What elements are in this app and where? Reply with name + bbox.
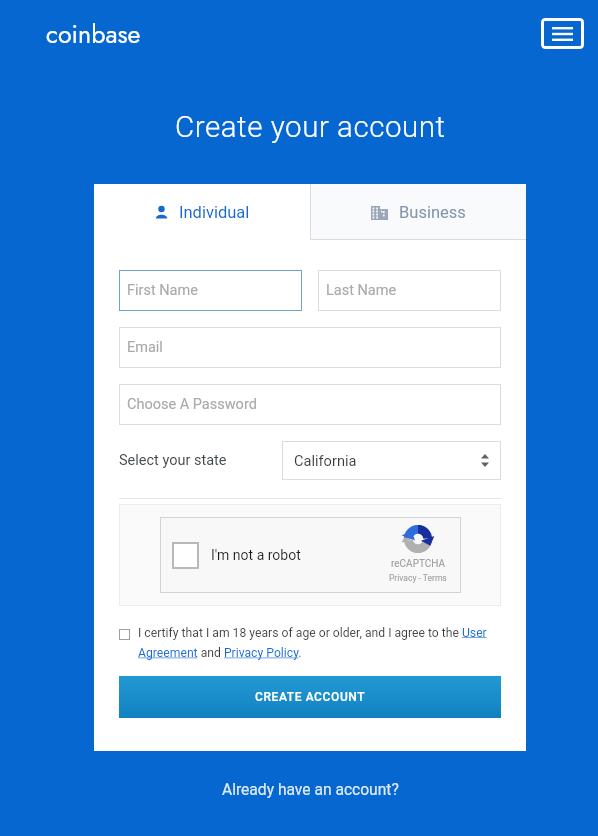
staticText: CREATE ACCOUNT (255, 690, 366, 704)
staticText: reCAPTCHA (391, 558, 446, 570)
staticText: Individual (179, 203, 250, 222)
staticText: California (294, 452, 357, 469)
button[interactable]: Business (310, 184, 526, 240)
staticText: Already have an account? (222, 781, 399, 799)
staticText: Business (399, 203, 466, 222)
button[interactable]: Menu (541, 18, 584, 49)
button[interactable]: Last Name (318, 270, 501, 311)
staticText: Select your state (119, 452, 227, 469)
button[interactable]: I certify that I am 18 years of age or o… (119, 629, 130, 640)
button[interactable]: Already have an account? (222, 781, 399, 799)
staticText: I certify that I am 18 years of age or o… (138, 626, 501, 660)
staticText: coinbase (46, 16, 141, 52)
staticText: Email (127, 339, 163, 356)
button[interactable]: CREATE ACCOUNT (119, 676, 501, 718)
staticText: Choose A Password (127, 396, 257, 413)
button[interactable]: California (282, 441, 501, 480)
staticText: First Name (127, 282, 198, 299)
staticText: Privacy - Terms (389, 573, 447, 583)
button[interactable]: coinbase (46, 16, 141, 52)
button[interactable]: I'm not a robot (172, 542, 199, 569)
staticText: Create your account (175, 110, 446, 145)
button[interactable]: First Name (119, 270, 302, 311)
staticText: I'm not a robot (211, 547, 301, 563)
button[interactable]: Email (119, 327, 501, 368)
button[interactable]: Choose A Password (119, 384, 501, 425)
staticText: Last Name (326, 282, 397, 299)
button[interactable]: Individual (94, 184, 310, 240)
